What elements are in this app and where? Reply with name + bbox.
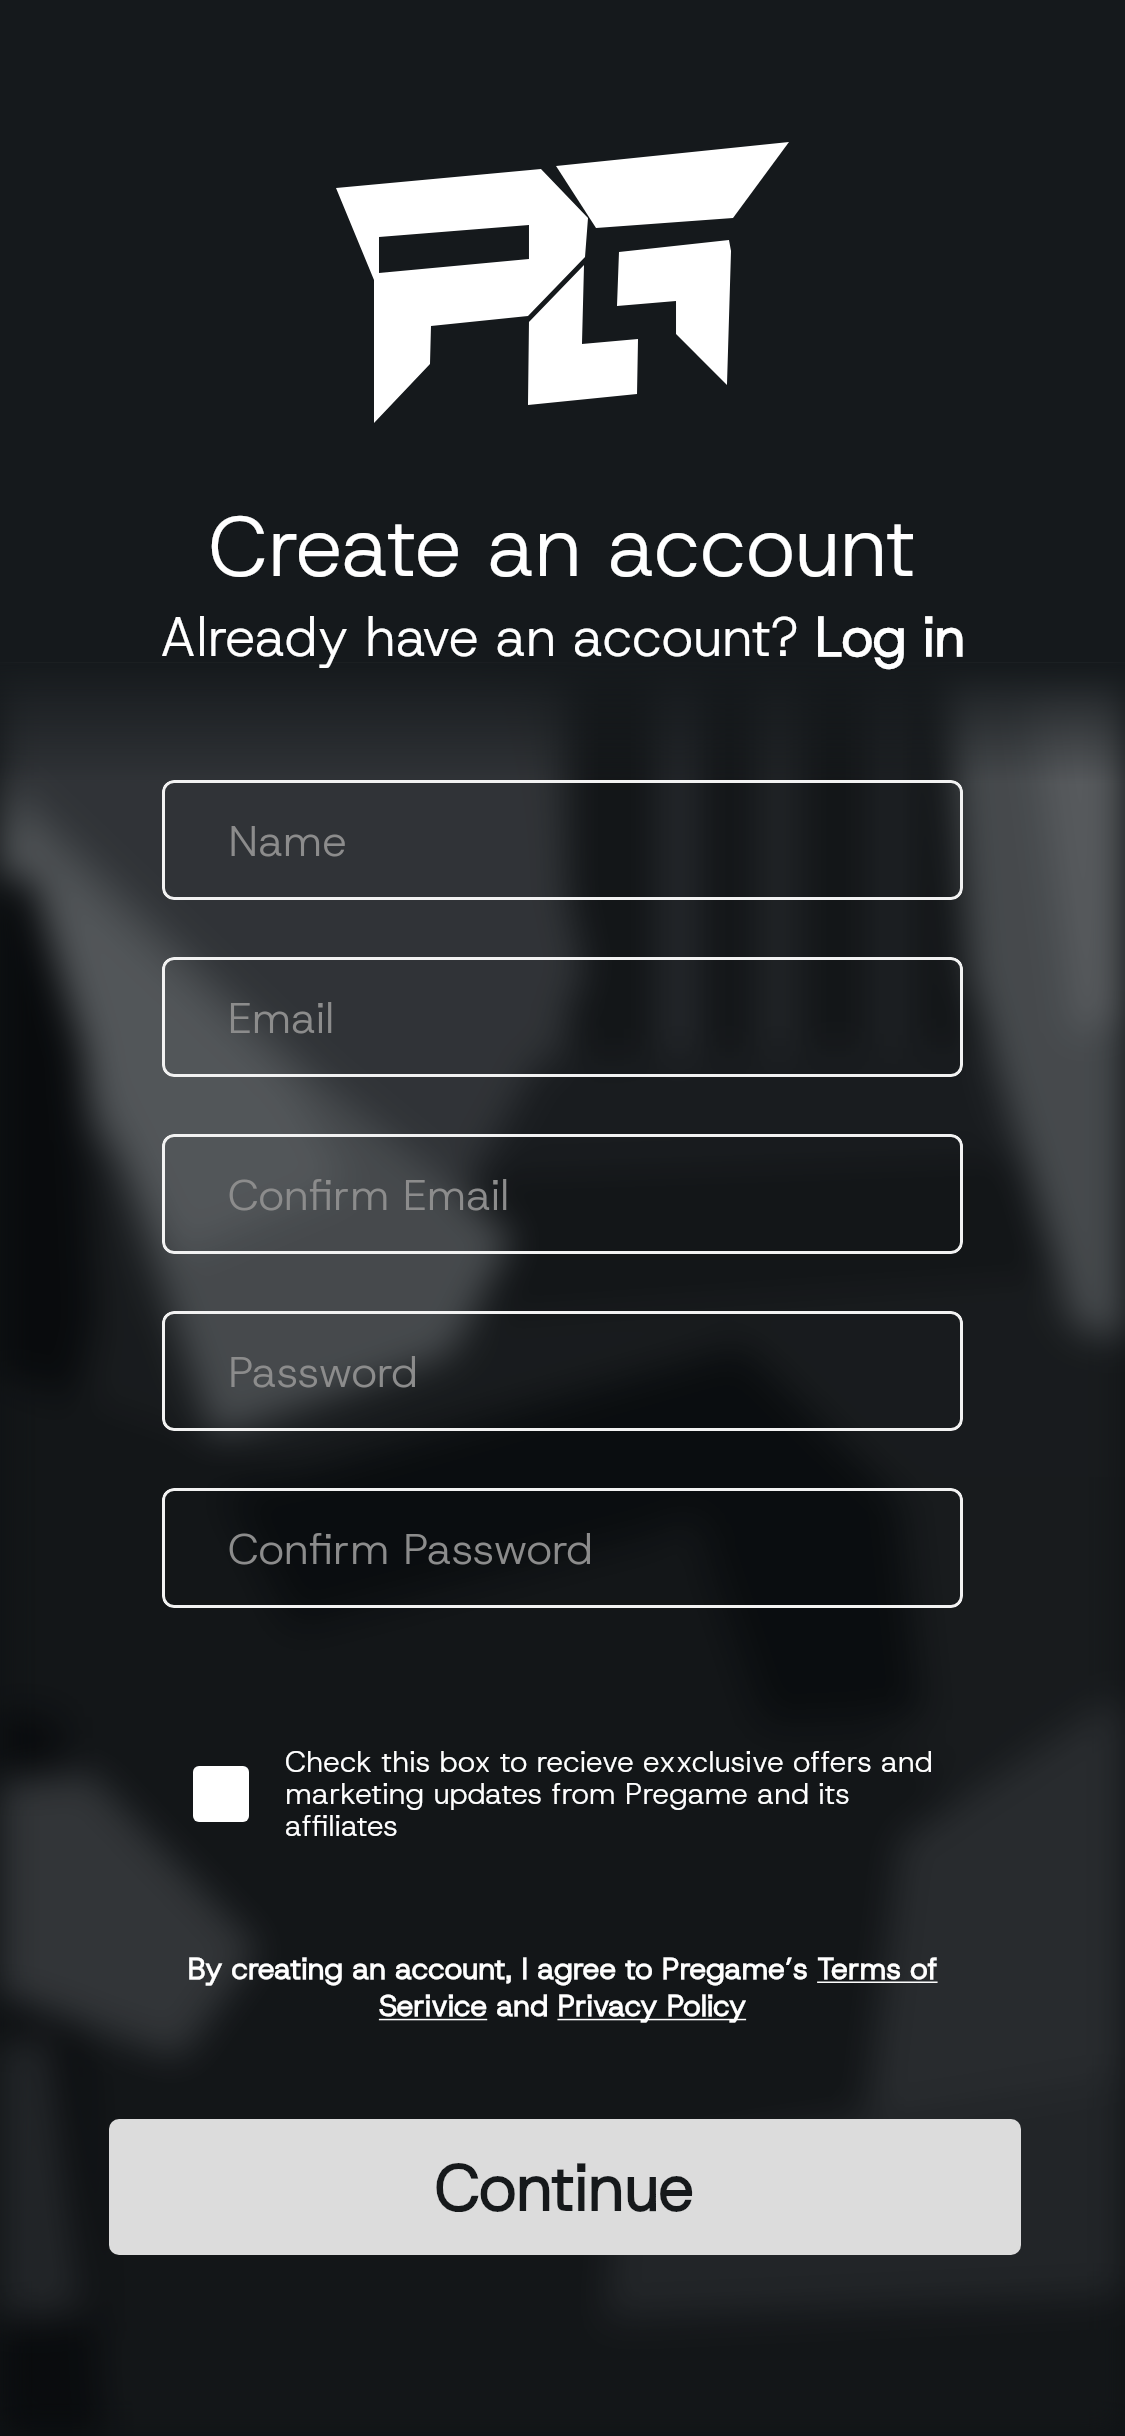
button[interactable]: Already have an account? Log in	[0, 601, 1125, 673]
button[interactable]: Confirm Password	[162, 1488, 963, 1608]
button[interactable]: Name	[162, 780, 963, 900]
other: Pregame logo	[336, 142, 789, 423]
button[interactable]: Email	[162, 957, 963, 1077]
staticText: Create an account	[0, 491, 1125, 603]
button[interactable]: Password	[162, 1311, 963, 1431]
staticText: By creating an account, I agree to Prega…	[182, 1949, 943, 2026]
staticText: Name	[228, 811, 347, 870]
staticText: Confirm Email	[228, 1165, 510, 1224]
staticText: Continue	[435, 2145, 695, 2230]
button[interactable]: Confirm Email	[162, 1134, 963, 1254]
staticText: Check this box to recieve exxclusive off…	[285, 1742, 969, 1846]
staticText: Confirm Password	[228, 1519, 593, 1578]
button[interactable]: Continue	[109, 2119, 1021, 2255]
button[interactable]: Check this box to recieve exxclusive off…	[193, 1742, 969, 1846]
staticText: Email	[228, 988, 335, 1047]
staticText: Password	[228, 1342, 418, 1401]
